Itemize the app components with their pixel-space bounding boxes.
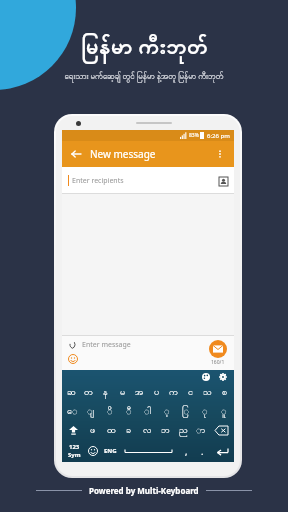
staticText: အ [135, 386, 144, 399]
staticText: ့ [164, 405, 170, 418]
staticText: ာ [196, 424, 206, 437]
button[interactable]: Shift [63, 421, 84, 440]
button[interactable]: More options [214, 148, 226, 160]
staticText: ဆ [67, 386, 76, 399]
button[interactable]: ဆ [63, 383, 80, 402]
button[interactable]: Emoji keyboard [85, 440, 101, 462]
staticText: ပ [154, 386, 160, 399]
button[interactable]: က [165, 383, 182, 402]
button[interactable]: Back [62, 141, 234, 167]
button[interactable]: Attach [67, 339, 78, 350]
staticText: သ [203, 386, 212, 399]
staticText: င [188, 386, 193, 399]
staticText: လ [143, 424, 152, 437]
staticText: ENG [104, 447, 117, 455]
staticText: ေ [67, 405, 78, 418]
button[interactable]: ့ [157, 402, 176, 421]
staticText: 83% [189, 132, 199, 139]
staticText: ဘ [161, 424, 170, 437]
staticText: 123 [69, 443, 80, 451]
button[interactable]: ူ [214, 402, 233, 421]
button[interactable]: စ [216, 383, 233, 402]
button[interactable]: လ [138, 421, 156, 440]
button[interactable]: , [178, 440, 194, 462]
staticText: 160/1 [211, 359, 225, 366]
staticText: ရေးသား မက်ဆေ့ချ် တွင် မြန်မာ နဲ့အတူ မြန်… [64, 70, 224, 82]
button[interactable]: ည [174, 421, 192, 440]
staticText: ထ [107, 424, 116, 437]
button[interactable]: ီ [119, 402, 138, 421]
staticText: စ [222, 386, 228, 399]
button[interactable]: ိ [100, 402, 119, 421]
button[interactable]: ENG [101, 440, 119, 462]
button[interactable]: ဖ [84, 421, 102, 440]
button[interactable]: Backspace [210, 421, 233, 440]
button[interactable]: Emoji [67, 353, 78, 364]
button[interactable]: သ [199, 383, 216, 402]
button[interactable]: ဘ [156, 421, 174, 440]
staticText: ည [179, 424, 188, 437]
button[interactable]: ပ [148, 383, 165, 402]
staticText: New message [90, 147, 156, 161]
button[interactable]: Space [119, 440, 178, 462]
button[interactable]: အ [131, 383, 148, 402]
staticText: ါ [144, 405, 152, 418]
other: Shift [63, 421, 84, 440]
staticText: Powered by Multi-Keyboard [89, 485, 199, 496]
staticText: က [169, 386, 178, 399]
staticText: တ [84, 386, 93, 399]
staticText: ခ [126, 424, 132, 437]
button[interactable]: ေ [63, 402, 81, 421]
staticText: . [201, 445, 204, 457]
staticText: , [185, 445, 188, 457]
staticText: ျ [87, 405, 95, 418]
button[interactable]: ါ [138, 402, 157, 421]
staticText: မ [120, 386, 126, 399]
staticText: ူ [221, 405, 227, 418]
button[interactable]: . [194, 440, 210, 462]
button[interactable]: Enter recipients [62, 167, 234, 193]
staticText: ီ [126, 405, 132, 418]
button[interactable]: ျ [81, 402, 100, 421]
button[interactable]: မ [114, 383, 131, 402]
staticText: 6:26 pm [207, 132, 230, 140]
button[interactable]: ာ [192, 421, 210, 440]
staticText: Enter recipients [72, 176, 124, 186]
staticText: ဖ [90, 424, 96, 437]
button[interactable]: တ [80, 383, 97, 402]
button[interactable]: 123 [63, 440, 85, 462]
staticText: ိ [107, 405, 113, 418]
staticText: န [103, 386, 108, 399]
button[interactable]: င [182, 383, 199, 402]
staticText: မြန်မာ စာလုံးများ အတွက် မြန်မာ စာလုံးမျာ… [138, 121, 152, 407]
button[interactable]: Enter [210, 440, 233, 462]
staticText: ု [202, 405, 208, 418]
button[interactable]: Theme [201, 372, 211, 382]
button[interactable]: ု [195, 402, 214, 421]
button[interactable]: Back [69, 147, 83, 161]
button[interactable]: န [97, 383, 114, 402]
button[interactable]: ထ [102, 421, 120, 440]
button[interactable]: ခ [120, 421, 138, 440]
staticText: Sym [68, 451, 81, 459]
staticText: ြ [182, 405, 190, 418]
other: Backspace [210, 421, 233, 440]
staticText: မြန်မာ ကီးဘုတ် [81, 30, 208, 64]
button[interactable]: Add contact [218, 176, 228, 186]
button[interactable]: Settings [218, 372, 228, 382]
staticText: Enter message [82, 340, 131, 350]
button[interactable]: ြ [176, 402, 195, 421]
button[interactable]: Send [209, 340, 227, 358]
